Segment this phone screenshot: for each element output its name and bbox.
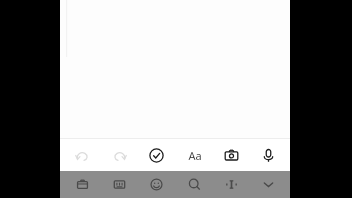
button[interactable]: Keyboard [104,171,134,198]
button[interactable]: Select text [216,171,246,198]
button[interactable]: Text formatting [179,139,209,171]
button[interactable]: Voice input [253,139,283,171]
staticText: Aa [188,148,202,163]
button[interactable]: Hide keyboard [253,171,283,198]
button[interactable]: Done [141,139,171,171]
button[interactable]: Redo [104,139,134,171]
button[interactable]: Attachments [67,171,97,198]
button[interactable]: Camera [216,139,246,171]
button[interactable]: Stickers [141,171,171,198]
button[interactable]: Undo [67,139,97,171]
button[interactable]: Search [179,171,209,198]
